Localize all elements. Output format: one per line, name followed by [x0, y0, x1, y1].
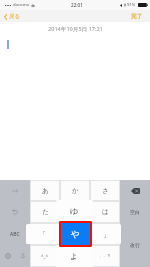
button[interactable]: さ: [90, 180, 120, 201]
staticText: 2014年10月5日 17:21: [48, 25, 103, 33]
button[interactable]: 戻る: [0, 11, 27, 22]
staticText: あ: [42, 187, 49, 195]
staticText: 91%: [127, 2, 136, 8]
staticText: 「: [39, 230, 46, 239]
staticText: た: [42, 208, 49, 216]
staticText: 22:01: [71, 2, 83, 8]
staticText: さ: [102, 187, 109, 195]
button[interactable]: ^_^: [30, 245, 60, 267]
button[interactable]: た: [30, 201, 60, 223]
button[interactable]: は: [90, 201, 120, 223]
staticText: か: [72, 187, 79, 195]
button[interactable]: よ: [56, 245, 93, 267]
button[interactable]: [30, 223, 60, 245]
button[interactable]: [60, 201, 90, 223]
staticText: 」: [103, 230, 110, 239]
button[interactable]: あ: [30, 180, 60, 201]
staticText: や: [71, 229, 80, 240]
staticText: ゆ: [70, 206, 79, 216]
button[interactable]: ゆ: [56, 200, 93, 222]
button[interactable]: [60, 245, 90, 267]
button[interactable]: Change keyboard: [0, 245, 15, 267]
button[interactable]: か: [60, 180, 90, 201]
staticText: ABC: [10, 231, 20, 238]
button[interactable]: Backspace: [120, 180, 150, 201]
button[interactable]: ABC: [0, 223, 30, 245]
staticText: よ: [70, 251, 79, 261]
button[interactable]: Voice input: [15, 245, 30, 267]
button[interactable]: [60, 223, 90, 245]
button[interactable]: や: [61, 223, 90, 245]
button[interactable]: Undo: [0, 201, 30, 223]
staticText: 完了: [131, 13, 143, 20]
staticText: は: [102, 208, 109, 216]
staticText: 空白: [130, 209, 140, 215]
button[interactable]: 「: [26, 224, 58, 244]
button[interactable]: 、。?!: [90, 245, 120, 267]
staticText: ^_^: [41, 253, 49, 259]
button[interactable]: 完了: [125, 11, 150, 22]
staticText: 改行: [130, 242, 140, 248]
button[interactable]: 改行: [120, 223, 150, 267]
staticText: 戻る: [9, 13, 21, 20]
button[interactable]: 」: [92, 224, 121, 244]
button[interactable]: [90, 223, 120, 245]
button[interactable]: 空白: [120, 201, 150, 223]
staticText: 、。?!: [99, 253, 111, 259]
staticText: docomo: [13, 2, 30, 8]
